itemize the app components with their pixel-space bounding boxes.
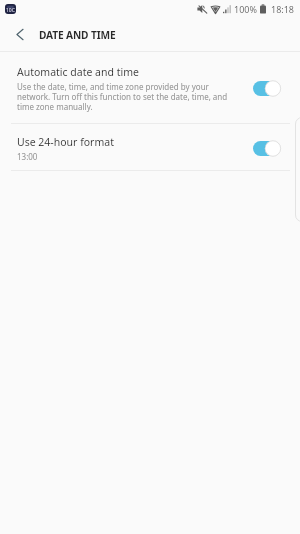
staticText: 18:18 xyxy=(271,3,295,15)
button[interactable]: Navigate up xyxy=(0,18,39,51)
staticText: Use the date, time, and time zone provid… xyxy=(17,81,231,112)
button[interactable]: On xyxy=(253,141,281,156)
staticText: 100% xyxy=(234,3,257,15)
staticText: Use 24-hour format xyxy=(17,135,114,149)
button[interactable]: On xyxy=(253,81,281,96)
staticText: 13:00 xyxy=(17,151,38,162)
button[interactable]: Automatic date and time xyxy=(0,52,300,123)
staticText: Automatic date and time xyxy=(17,65,139,79)
button[interactable]: Use 24-hour format xyxy=(0,124,300,170)
staticText: 10C xyxy=(6,7,15,14)
staticText: DATE AND TIME xyxy=(39,28,116,42)
